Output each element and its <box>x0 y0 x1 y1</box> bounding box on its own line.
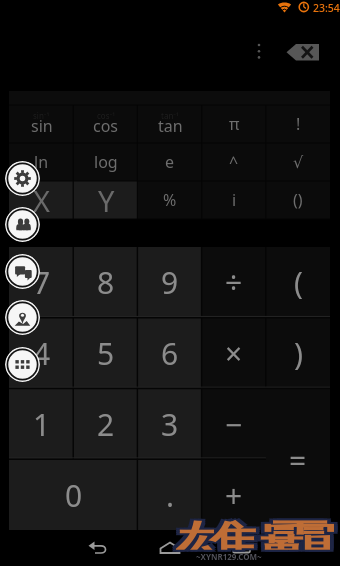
staticText: √ <box>293 153 304 172</box>
staticText: tan⁻¹ <box>161 110 179 121</box>
button[interactable] <box>266 389 330 460</box>
button[interactable]: e <box>138 143 202 181</box>
staticText: = <box>289 440 307 481</box>
button[interactable]: 8 <box>74 247 138 318</box>
staticText: cos⁻¹ <box>97 110 116 121</box>
button[interactable]: . <box>138 460 202 530</box>
staticText: − <box>225 404 243 445</box>
button[interactable]: () <box>266 181 330 219</box>
staticText: ^ <box>229 151 239 173</box>
staticText: ! <box>296 113 301 135</box>
button[interactable]: Y <box>74 181 138 219</box>
staticText: 雄霸 <box>172 513 333 548</box>
staticText: 0 <box>65 475 83 516</box>
staticText: 23:54 <box>313 1 340 15</box>
button[interactable]: ÷ <box>202 247 266 318</box>
staticText: Y <box>98 181 115 219</box>
button[interactable]: 1 <box>9 389 74 460</box>
staticText: × <box>225 333 243 374</box>
button[interactable]: 0 <box>9 460 138 530</box>
button[interactable]: 3 <box>138 389 202 460</box>
button[interactable]: cos⁻¹ <box>74 105 138 143</box>
button[interactable]: √ <box>266 143 330 181</box>
staticText: ln <box>34 151 49 173</box>
staticText: . <box>166 475 175 516</box>
button[interactable]: 5 <box>74 318 138 389</box>
staticText: + <box>225 475 243 516</box>
staticText: cos <box>93 115 119 137</box>
staticText: ) <box>294 333 303 374</box>
button[interactable]: log <box>74 143 138 181</box>
staticText: 雄霸 <box>172 515 333 550</box>
button[interactable]: 7 <box>9 247 74 318</box>
staticText: ~XYNR129.COM~ <box>196 551 262 562</box>
staticText: tan <box>158 115 183 137</box>
staticText: 雄霸 <box>176 517 337 552</box>
staticText: e <box>165 151 175 173</box>
staticText: 9 <box>161 262 179 303</box>
button[interactable]: × <box>202 318 266 389</box>
button[interactable]: Contacts <box>5 207 40 242</box>
staticText: 雄霸 <box>180 517 340 552</box>
staticText: ÷ <box>225 262 243 303</box>
staticText: X <box>33 181 50 219</box>
button[interactable]: 4 <box>9 318 74 389</box>
staticText: log <box>94 151 118 173</box>
button[interactable]: Apps <box>5 347 40 382</box>
staticText: 2 <box>97 404 115 445</box>
button[interactable]: ^ <box>202 143 266 181</box>
button[interactable]: More options <box>247 34 271 66</box>
button[interactable]: i <box>202 181 266 219</box>
button[interactable]: Backspace <box>282 38 326 66</box>
button[interactable]: tan⁻¹ <box>138 105 202 143</box>
staticText: 雄霸 <box>176 515 337 550</box>
button[interactable]: ) <box>266 318 330 389</box>
staticText: ( <box>294 262 303 303</box>
button[interactable]: + <box>202 460 266 530</box>
button[interactable]: π <box>202 105 266 143</box>
button[interactable]: X <box>9 181 74 219</box>
staticText: % <box>163 189 177 211</box>
button[interactable]: ln <box>9 143 74 181</box>
button[interactable]: 6 <box>138 318 202 389</box>
staticText: 6 <box>161 333 179 374</box>
button[interactable]: Recent apps <box>219 530 263 566</box>
button[interactable]: Back <box>76 530 120 566</box>
button[interactable]: Messages <box>5 254 40 289</box>
button[interactable]: 2 <box>74 389 138 460</box>
staticText: 雄霸 <box>176 513 337 548</box>
button[interactable]: Home <box>148 530 192 566</box>
staticText: 雄霸 <box>172 517 333 552</box>
staticText: 雄霸 <box>180 513 340 548</box>
staticText: sin⁻¹ <box>33 110 50 121</box>
staticText: sin <box>31 115 53 137</box>
button[interactable]: − <box>202 389 266 460</box>
button[interactable]: = <box>266 389 330 531</box>
button[interactable]: 9 <box>138 247 202 318</box>
button[interactable]: Settings <box>5 161 40 196</box>
button[interactable]: sin⁻¹ <box>9 105 74 143</box>
staticText: i <box>232 189 237 211</box>
staticText: 4 <box>33 333 51 374</box>
button[interactable]: ! <box>266 105 330 143</box>
staticText: () <box>293 189 303 211</box>
staticText: 7 <box>33 262 51 303</box>
staticText: π <box>229 113 240 135</box>
button[interactable]: % <box>138 181 202 219</box>
button[interactable] <box>266 460 330 530</box>
staticText: 1 <box>33 404 51 445</box>
button[interactable]: Location <box>5 300 40 335</box>
staticText: 8 <box>97 262 115 303</box>
staticText: 3 <box>161 404 179 445</box>
staticText: 雄霸 <box>180 515 340 550</box>
button[interactable]: ( <box>266 247 330 318</box>
staticText: 5 <box>97 333 115 374</box>
